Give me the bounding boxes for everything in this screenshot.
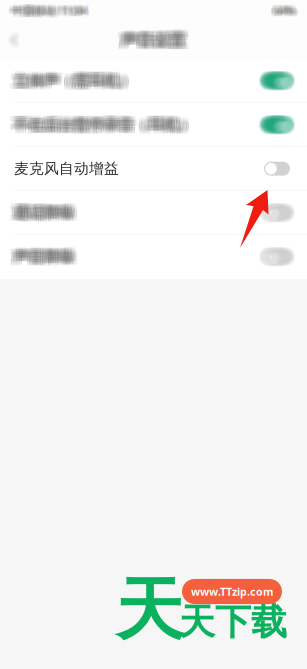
- staticText: 声音降噪: [16, 247, 76, 265]
- staticText: 立体声（需耳机）: [17, 71, 137, 89]
- staticText: 声音设置: [123, 29, 187, 49]
- staticText: 中国移动 11:04: [12, 3, 86, 17]
- staticText: 64%: [274, 1, 295, 16]
- staticText: 通话降噪: [19, 201, 79, 219]
- staticText: 通话降噪: [12, 206, 72, 224]
- staticText: 声音设置: [124, 31, 188, 51]
- staticText: 立体声（需耳机）: [9, 69, 129, 87]
- button[interactable]: 立体声（需耳机）: [0, 59, 307, 103]
- staticText: 64%: [278, 2, 299, 16]
- staticText: 中国移动 11:04: [10, 1, 84, 16]
- staticText: 不在后台暂停录音（耳机）: [11, 114, 191, 132]
- staticText: 通话降噪: [16, 206, 76, 224]
- staticText: 声音设置: [120, 31, 184, 51]
- staticText: 不在后台暂停录音（耳机）: [17, 115, 197, 133]
- staticText: 中国移动 11:04: [10, 5, 84, 20]
- staticText: 64%: [278, 5, 299, 20]
- staticText: 通话降噪: [14, 205, 74, 223]
- staticText: 声音降噪: [11, 249, 71, 267]
- staticText: 立体声（需耳机）: [19, 72, 139, 90]
- staticText: 中国移动 11:04: [14, 5, 88, 20]
- button[interactable]: 麦克风自动增益: [0, 147, 307, 191]
- staticText: 立体声（需耳机）: [9, 72, 129, 90]
- staticText: 不在后台暂停录音（耳机）: [14, 118, 194, 136]
- staticText: 不在后台暂停录音（耳机）: [11, 116, 191, 134]
- staticText: 声音降噪: [9, 250, 69, 268]
- staticText: 不在后台暂停录音（耳机）: [16, 114, 196, 132]
- staticText: 64%: [270, 3, 291, 18]
- staticText: 通话降噪: [19, 203, 79, 221]
- staticText: 64%: [272, 3, 293, 17]
- staticText: 中国移动 11:04: [11, 3, 85, 17]
- staticText: 不在后台暂停录音（耳机）: [17, 116, 197, 134]
- staticText: 立体声（需耳机）: [11, 73, 131, 91]
- staticText: 立体声（需耳机）: [14, 70, 134, 88]
- staticText: 声音设置: [121, 31, 185, 51]
- staticText: 64%: [272, 3, 293, 18]
- staticText: 声音设置: [121, 28, 185, 48]
- staticText: 不在后台暂停录音（耳机）: [16, 118, 196, 136]
- staticText: 声音降噪: [19, 248, 79, 266]
- staticText: 声音设置: [117, 28, 181, 47]
- staticText: 中国移动 11:04: [8, 3, 82, 17]
- staticText: 通话降噪: [12, 205, 72, 223]
- staticText: 声音降噪: [11, 250, 71, 268]
- staticText: 64%: [273, 5, 294, 19]
- staticText: 64%: [275, 2, 296, 16]
- button[interactable]: Back: [0, 21, 30, 59]
- staticText: 声音设置: [120, 32, 184, 51]
- staticText: 通话降噪: [16, 201, 76, 219]
- staticText: 声音设置: [124, 29, 188, 49]
- staticText: 中国移动 11:04: [13, 1, 87, 16]
- staticText: 不在后台暂停录音（耳机）: [19, 114, 199, 132]
- staticText: 64%: [275, 5, 296, 20]
- button[interactable]: 通话降噪: [0, 191, 307, 235]
- staticText: 声音降噪: [19, 246, 79, 264]
- staticText: 通话降噪: [11, 204, 71, 222]
- staticText: 声音降噪: [14, 249, 74, 267]
- staticText: 通话降噪: [17, 202, 77, 220]
- staticText: 通话降噪: [12, 204, 72, 222]
- staticText: 立体声（需耳机）: [16, 72, 136, 90]
- staticText: 立体声（需耳机）: [19, 69, 139, 87]
- staticText: 立体声（需耳机）: [9, 74, 129, 92]
- staticText: 立体声（需耳机）: [17, 72, 137, 90]
- staticText: 通话降噪: [9, 206, 69, 224]
- staticText: 中国移动 11:04: [11, 5, 85, 19]
- staticText: 立体声（需耳机）: [17, 73, 137, 91]
- staticText: 立体声（需耳机）: [11, 70, 131, 88]
- staticText: 不在后台暂停录音（耳机）: [16, 117, 196, 135]
- staticText: 声音降噪: [11, 248, 71, 266]
- staticText: 中国移动 11:04: [8, 5, 82, 19]
- staticText: 中国移动 11:04: [13, 5, 87, 19]
- staticText: 中国移动 11:04: [14, 5, 88, 19]
- staticText: 64%: [278, 3, 299, 17]
- staticText: 立体声（需耳机）: [14, 69, 134, 87]
- staticText: 64%: [273, 4, 294, 18]
- staticText: 声音降噪: [16, 245, 76, 263]
- staticText: 64%: [270, 5, 291, 19]
- staticText: 不在后台暂停录音（耳机）: [12, 116, 192, 134]
- staticText: 声音降噪: [12, 250, 72, 268]
- staticText: 声音设置: [123, 28, 187, 48]
- staticText: 声音设置: [123, 32, 187, 51]
- staticText: 中国移动 11:04: [8, 5, 82, 20]
- staticText: 通话降噪: [19, 202, 79, 220]
- staticText: 不在后台暂停录音（耳机）: [16, 116, 196, 134]
- staticText: 声音降噪: [16, 250, 76, 268]
- staticText: 声音降噪: [14, 246, 74, 264]
- button[interactable]: 声音降噪: [0, 235, 307, 279]
- staticText: 通话降噪: [12, 201, 72, 219]
- staticText: 64%: [272, 2, 293, 16]
- staticText: 立体声（需耳机）: [14, 73, 134, 91]
- staticText: 声音设置: [124, 30, 188, 50]
- button[interactable]: 不在后台暂停录音（耳机）: [0, 103, 307, 147]
- staticText: 通话降噪: [17, 203, 77, 221]
- staticText: 不在后台暂停录音（耳机）: [17, 117, 197, 135]
- staticText: 声音设置: [118, 29, 182, 49]
- staticText: 声音降噪: [19, 249, 79, 267]
- staticText: 立体声（需耳机）: [12, 73, 132, 91]
- staticText: 立体声（需耳机）: [17, 72, 137, 90]
- staticText: 中国移动 11:04: [13, 2, 87, 16]
- staticText: 通话降噪: [14, 204, 74, 222]
